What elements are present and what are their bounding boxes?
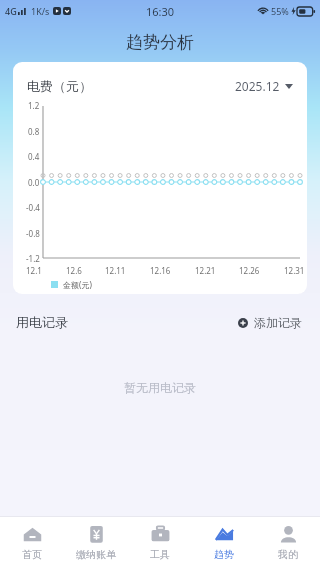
staticText: 金额(元) xyxy=(63,279,92,290)
staticText: 用电记录 xyxy=(16,314,68,330)
staticText: 2025.12 xyxy=(235,78,280,94)
button[interactable]: 缴纳账单 xyxy=(64,517,128,569)
staticText: 16:30 xyxy=(146,4,175,19)
button[interactable]: 2025.12 xyxy=(231,74,297,98)
button[interactable]: 工具 xyxy=(128,517,192,569)
staticText: 趋势 xyxy=(214,548,234,561)
staticText: 添加记录 xyxy=(254,315,302,330)
staticText: 4G xyxy=(5,5,17,17)
staticText: 0.0 xyxy=(28,177,40,188)
button[interactable]: 我的 xyxy=(256,517,320,569)
staticText: 0.8 xyxy=(28,126,40,137)
staticText: 12.1 xyxy=(26,265,42,276)
button[interactable]: 添加记录 xyxy=(236,312,304,333)
staticText: 1K/s xyxy=(31,5,50,17)
button[interactable]: 首页 xyxy=(0,517,64,569)
staticText: 1.2 xyxy=(28,100,40,111)
staticText: 12.6 xyxy=(66,265,82,276)
button[interactable]: 趋势 xyxy=(192,517,256,569)
staticText: 我的 xyxy=(278,548,298,561)
staticText: 0.4 xyxy=(28,151,40,162)
staticText: 首页 xyxy=(22,548,42,561)
staticText: 12.31 xyxy=(284,265,305,276)
staticText: 55% xyxy=(271,5,289,17)
staticText: 缴纳账单 xyxy=(76,548,116,561)
staticText: 12.11 xyxy=(105,265,126,276)
staticText: 趋势分析 xyxy=(126,32,194,53)
staticText: -0.4 xyxy=(26,202,40,213)
staticText: 12.21 xyxy=(195,265,216,276)
staticText: 工具 xyxy=(150,548,170,561)
staticText: -1.2 xyxy=(26,253,40,264)
staticText: 12.26 xyxy=(239,265,260,276)
staticText: 暂无用电记录 xyxy=(124,380,196,395)
staticText: 12.16 xyxy=(150,265,171,276)
staticText: 电费（元） xyxy=(27,78,92,94)
staticText: -0.8 xyxy=(26,228,40,239)
